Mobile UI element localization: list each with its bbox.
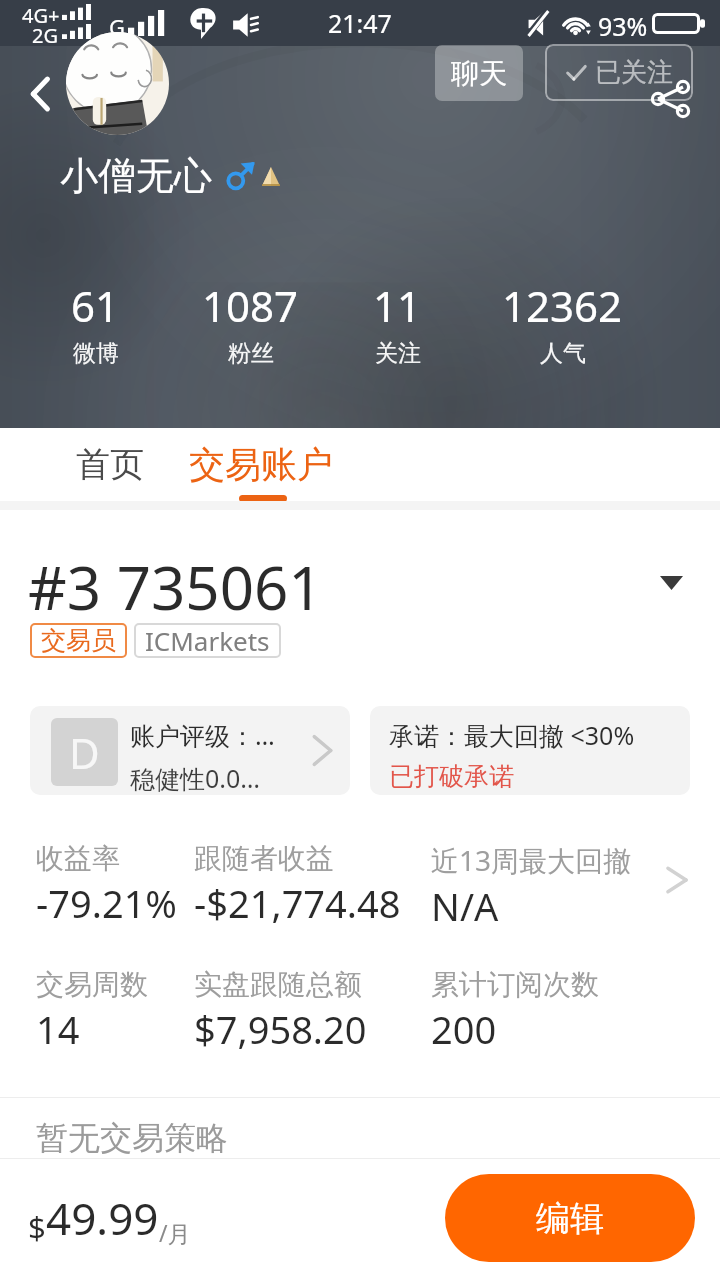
- staticText: 近13周最大回撤: [431, 841, 632, 879]
- staticText: 49.99: [46, 1188, 159, 1248]
- staticText: D: [69, 724, 100, 781]
- staticText: 61: [71, 277, 120, 334]
- staticText: 微博: [73, 339, 119, 368]
- staticText: 12362: [502, 277, 623, 334]
- staticText: 2G: [32, 22, 58, 49]
- staticText: 200: [431, 1003, 497, 1055]
- staticText: 小僧无心: [60, 152, 212, 200]
- button[interactable]: Share: [634, 70, 696, 132]
- button[interactable]: 首页: [36, 428, 184, 500]
- button[interactable]: 61: [25, 277, 165, 368]
- staticText: G: [109, 12, 126, 42]
- staticText: 首页: [76, 443, 144, 486]
- staticText: 账户评级：…: [130, 718, 275, 752]
- button[interactable]: 编辑: [445, 1174, 695, 1262]
- button[interactable]: Back: [8, 62, 72, 126]
- staticText: 承诺：最大回撤 <30%: [389, 718, 635, 752]
- staticText: 11: [373, 277, 422, 334]
- staticText: 人气: [540, 339, 586, 368]
- button[interactable]: 1087: [180, 277, 320, 368]
- button[interactable]: Expand account list: [643, 555, 699, 611]
- staticText: 已打破承诺: [389, 761, 514, 792]
- staticText: 累计订阅次数: [431, 967, 599, 1002]
- staticText: 收益率: [36, 841, 120, 876]
- staticText: 交易周数: [36, 967, 148, 1002]
- staticText: 交易员: [41, 625, 116, 656]
- staticText: 暂无交易策略: [36, 1118, 228, 1158]
- staticText: /月: [159, 1217, 191, 1248]
- staticText: 实盘跟随总额: [194, 967, 362, 1002]
- button[interactable]: D: [30, 706, 350, 795]
- staticText: -79.21%: [36, 877, 177, 929]
- button[interactable]: 聊天: [435, 45, 523, 101]
- staticText: 编辑: [536, 1197, 604, 1240]
- staticText: $: [28, 1206, 46, 1248]
- button[interactable]: 交易账户: [185, 428, 337, 500]
- staticText: 已关注: [595, 56, 673, 89]
- staticText: 粉丝: [228, 339, 274, 368]
- staticText: $7,958.20: [194, 1003, 367, 1055]
- button[interactable]: 承诺：最大回撤 <30%: [370, 706, 690, 795]
- staticText: 21:47: [328, 6, 392, 40]
- staticText: 跟随者收益: [194, 841, 334, 876]
- button[interactable]: 已关注: [545, 44, 693, 101]
- staticText: 聊天: [451, 56, 507, 91]
- staticText: 关注: [375, 339, 421, 368]
- staticText: 稳健性0.0…: [130, 761, 261, 795]
- staticText: #3 735061: [28, 546, 323, 628]
- staticText: ICMarkets: [145, 623, 270, 658]
- button[interactable]: 12362: [492, 277, 632, 368]
- button[interactable]: 11: [327, 277, 467, 368]
- button[interactable]: Avatar: [66, 32, 169, 135]
- staticText: 4G+: [22, 2, 60, 29]
- staticText: 14: [36, 1003, 80, 1055]
- staticText: -$21,774.48: [194, 877, 401, 929]
- staticText: 1087: [202, 277, 299, 334]
- staticText: N/A: [431, 880, 499, 932]
- staticText: 93%: [598, 9, 648, 43]
- staticText: 交易账户: [189, 442, 333, 487]
